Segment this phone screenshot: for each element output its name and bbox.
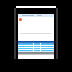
button[interactable]: Profile (19, 18, 22, 21)
button[interactable]: Top app bar (18, 14, 54, 17)
